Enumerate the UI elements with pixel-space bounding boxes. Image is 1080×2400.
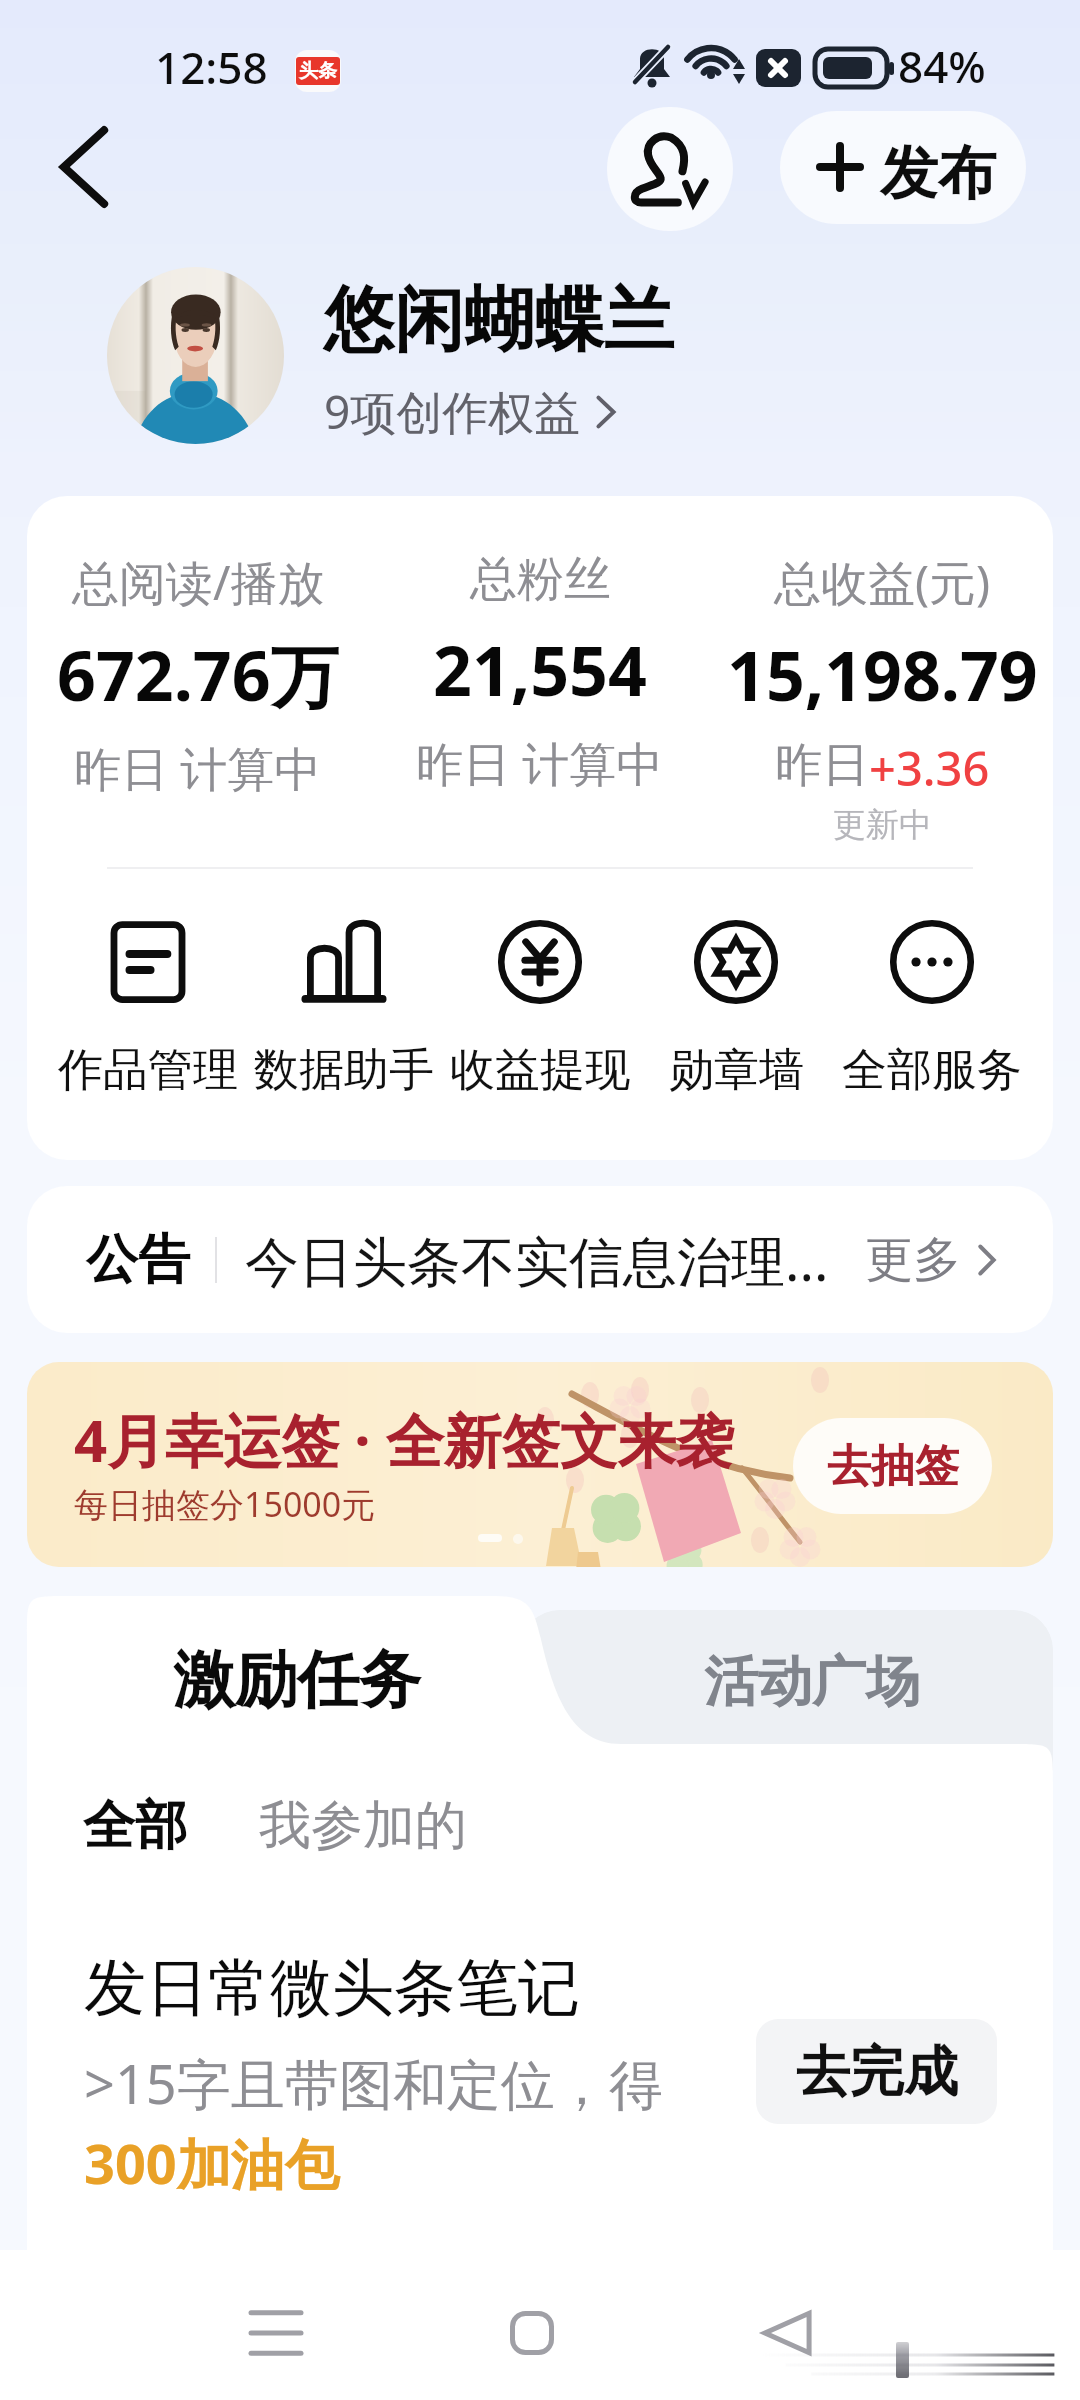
button[interactable]: 总粉丝 <box>369 550 711 795</box>
staticText: 每日抽签分15000元 <box>74 1481 376 1527</box>
staticText: 84% <box>898 36 986 96</box>
button[interactable]: 勋章墙 <box>638 920 834 1099</box>
staticText: 300加油包 <box>84 2126 339 2200</box>
button[interactable]: 活动广场 <box>520 1610 1053 1770</box>
staticText: +3.36 <box>869 736 990 800</box>
staticText: 收益提现 <box>450 1042 630 1099</box>
staticText: 全部 <box>83 1793 187 1859</box>
staticText: 悠闲蝴蝶兰 <box>324 277 674 365</box>
staticText: 昨日 <box>775 736 869 795</box>
staticText: 去完成 <box>796 2038 958 2106</box>
button[interactable]: 全部 <box>83 1793 187 1859</box>
button[interactable]: 收益提现 <box>442 920 638 1099</box>
staticText: 4月幸运签 · 全新签文来袭 <box>74 1400 734 1479</box>
button[interactable]: 9项创作权益 <box>324 380 615 443</box>
staticText: 作品管理 <box>58 1042 238 1099</box>
staticText: 勋章墙 <box>669 1042 804 1099</box>
staticText: 12:58 <box>155 37 268 97</box>
staticText: 我参加的 <box>259 1793 467 1859</box>
button[interactable]: 我参加的 <box>259 1793 467 1859</box>
button[interactable]: 总阅读/播放 <box>27 550 369 800</box>
button[interactable]: Creator center <box>607 107 733 231</box>
button[interactable]: 发布 <box>780 111 1026 224</box>
button[interactable]: Home <box>484 2285 580 2381</box>
staticText: >15字且带图和定位，得 <box>84 2046 663 2120</box>
button[interactable]: 4月幸运签 · 全新签文来袭 <box>27 1362 1053 1567</box>
staticText: 激励任务 <box>173 1641 421 1719</box>
staticText: 9项创作权益 <box>324 380 581 443</box>
button[interactable]: 激励任务 <box>27 1596 572 1744</box>
staticText: 头条 <box>299 59 337 83</box>
staticText: 去抽签 <box>827 1439 959 1494</box>
staticText: 总粉丝 <box>470 550 611 609</box>
staticText: 21,554 <box>433 623 647 716</box>
staticText: 总收益(元) <box>774 550 991 614</box>
staticText: 更多 <box>865 1230 961 1290</box>
button[interactable]: 总收益(元) <box>711 550 1053 846</box>
staticText: 15,198.79 <box>727 628 1038 721</box>
button[interactable]: 作品管理 <box>50 920 246 1099</box>
button[interactable]: 全部服务 <box>834 920 1030 1099</box>
staticText: 数据助手 <box>254 1042 434 1099</box>
button[interactable]: 去完成 <box>756 2019 997 2124</box>
button[interactable]: Avatar <box>107 267 284 444</box>
staticText: 发日常微头条笔记 <box>84 1949 580 2027</box>
staticText: 672.76万 <box>57 628 339 721</box>
staticText: 全部服务 <box>842 1042 1022 1099</box>
staticText: 活动广场 <box>704 1648 920 1716</box>
staticText: 昨日 计算中 <box>74 736 322 800</box>
staticText: 昨日 计算中 <box>416 731 664 795</box>
button[interactable]: Back <box>18 112 150 222</box>
staticText: 公告 <box>86 1227 190 1293</box>
staticText: 今日头条不实信息治理... <box>245 1223 829 1297</box>
button[interactable]: 公告 <box>27 1186 1053 1333</box>
staticText: 更新中 <box>833 804 932 846</box>
button[interactable]: 数据助手 <box>246 920 442 1099</box>
button[interactable]: Recents <box>228 2285 324 2381</box>
button[interactable]: 去抽签 <box>793 1418 992 1514</box>
button[interactable]: Back <box>739 2285 835 2381</box>
staticText: 总阅读/播放 <box>72 550 325 614</box>
staticText: 发布 <box>880 137 996 210</box>
